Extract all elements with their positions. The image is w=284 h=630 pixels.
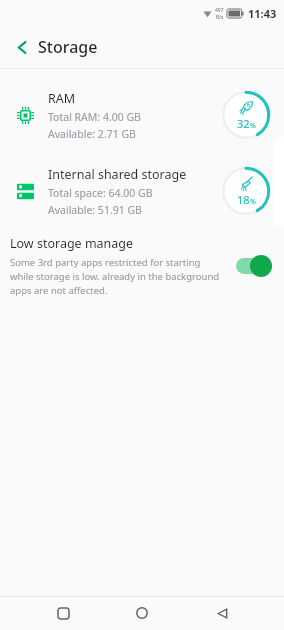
staticText: 18 (237, 192, 250, 207)
staticText: 11:43 (248, 6, 277, 21)
button[interactable]: Recent apps (46, 596, 80, 630)
button[interactable]: Back (8, 33, 36, 61)
staticText: RAM (48, 90, 76, 107)
button[interactable]: Home (125, 596, 159, 630)
button[interactable]: Clean storage (220, 165, 272, 217)
staticText: Storage (38, 36, 98, 58)
staticText: Total RAM: 4.00 GB (48, 110, 141, 124)
button[interactable]: Internal shared storage (0, 153, 284, 229)
staticText: Available: 2.71 GB (48, 127, 136, 141)
staticText: Available: 51.91 GB (48, 203, 142, 217)
staticText: % (250, 121, 256, 131)
button[interactable]: Low storage manage toggle (236, 255, 272, 277)
button[interactable]: Low storage manage (0, 229, 284, 307)
staticText: Low storage manage (10, 235, 134, 252)
button[interactable]: Boost RAM (220, 89, 272, 141)
button[interactable]: Back (205, 596, 239, 630)
staticText: Total space: 64.00 GB (48, 186, 153, 200)
staticText: 32 (237, 116, 250, 131)
staticText: Some 3rd party apps restricted for start… (10, 256, 226, 297)
staticText: Internal shared storage (48, 166, 187, 183)
staticText: 497 (215, 7, 224, 14)
staticText: B/s (216, 14, 224, 21)
button[interactable]: RAM (0, 77, 284, 153)
staticText: % (250, 197, 256, 207)
